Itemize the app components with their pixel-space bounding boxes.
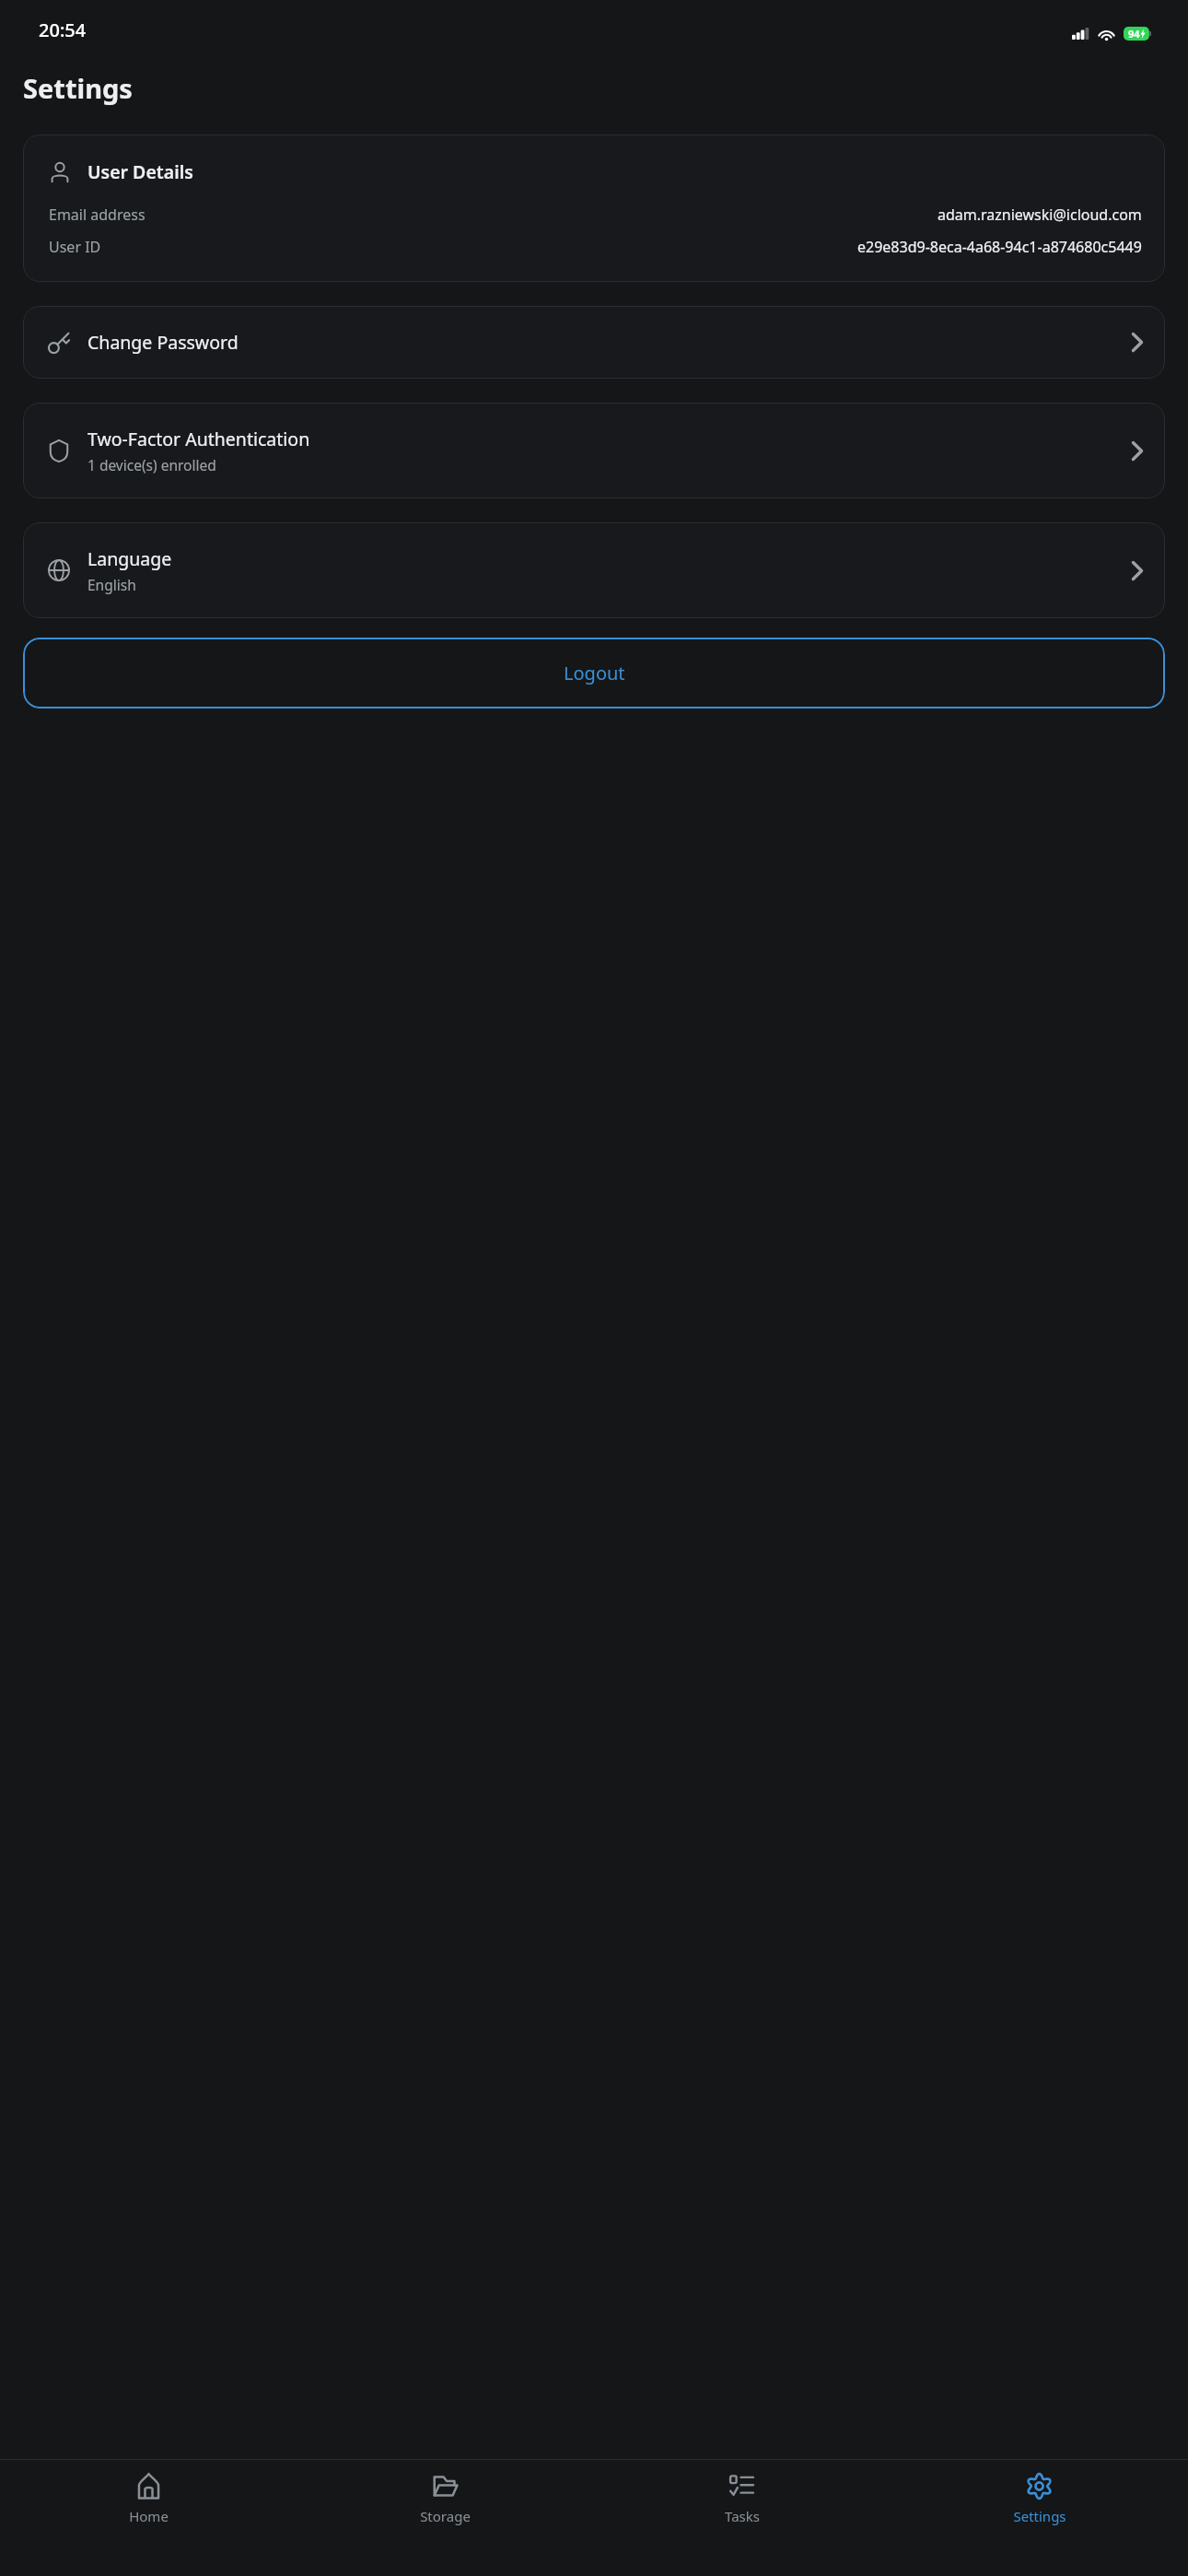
button[interactable]: Shield bbox=[23, 403, 1165, 498]
other: Key bbox=[47, 331, 71, 355]
other: Globe bbox=[47, 558, 71, 582]
staticText: Logout bbox=[564, 661, 625, 685]
other: Shield bbox=[47, 439, 71, 463]
staticText: 1 device(s) enrolled bbox=[87, 455, 216, 474]
staticText: 20:54 bbox=[39, 18, 87, 42]
staticText: adam.razniewski@icloud.com bbox=[938, 205, 1142, 225]
staticText: Home bbox=[129, 2507, 169, 2525]
staticText: Email address bbox=[49, 205, 146, 225]
staticText: Storage bbox=[420, 2507, 471, 2525]
staticText: Language bbox=[87, 546, 172, 571]
staticText: e29e83d9-8eca-4a68-94c1-a874680c5449 bbox=[857, 237, 1142, 257]
staticText: Settings bbox=[23, 70, 133, 106]
button[interactable]: Tasks bbox=[593, 2460, 891, 2576]
button[interactable]: Storage bbox=[297, 2460, 593, 2576]
staticText: Two-Factor Authentication bbox=[87, 427, 310, 451]
button[interactable]: User bbox=[23, 135, 1165, 282]
staticText: 94 bbox=[1128, 27, 1140, 41]
button[interactable]: Globe bbox=[23, 522, 1165, 618]
button[interactable]: Logout bbox=[23, 638, 1165, 708]
button[interactable]: Home bbox=[0, 2460, 297, 2576]
other: User bbox=[49, 161, 71, 183]
staticText: Tasks bbox=[725, 2507, 760, 2525]
button[interactable]: Key bbox=[23, 306, 1165, 379]
staticText: Settings bbox=[1013, 2507, 1066, 2525]
staticText: English bbox=[87, 575, 136, 594]
button[interactable]: Settings bbox=[891, 2460, 1188, 2576]
staticText: Change Password bbox=[87, 330, 239, 355]
staticText: User ID bbox=[49, 237, 101, 257]
staticText: User Details bbox=[87, 159, 193, 184]
